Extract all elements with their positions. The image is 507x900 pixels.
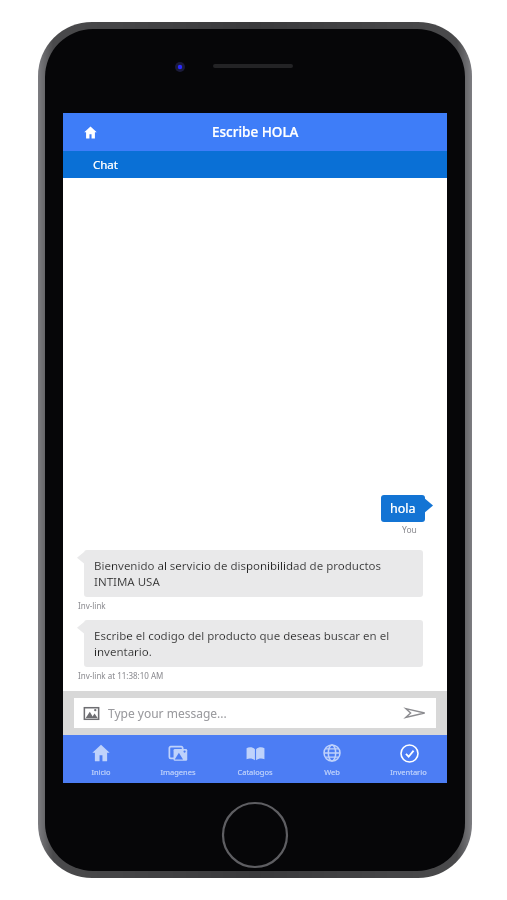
staticText: Type your message... (108, 705, 227, 721)
button[interactable]: Catalogos (216, 735, 293, 783)
staticText: Inv-link (78, 600, 106, 611)
staticText: Bienvenido al servicio de disponibilidad… (94, 558, 413, 589)
button[interactable]: Home (75, 117, 105, 147)
button[interactable]: hola (381, 495, 433, 522)
button[interactable]: Attach image (74, 698, 436, 728)
staticText: Escribe HOLA (212, 123, 299, 141)
staticText: Catalogos (237, 767, 273, 777)
button[interactable]: Imagenes (139, 735, 216, 783)
staticText: Chat (93, 157, 118, 173)
staticText: You (402, 524, 417, 536)
button[interactable]: Bienvenido al servicio de disponibilidad… (77, 550, 423, 597)
staticText: hola (390, 500, 416, 517)
button[interactable]: Escribe el codigo del producto que desea… (77, 620, 423, 667)
staticText: Escribe el codigo del producto que desea… (94, 628, 413, 659)
staticText: Web (324, 767, 340, 777)
button[interactable]: Inicio (63, 735, 139, 783)
staticText: Inv-link at 11:38:10 AM (78, 670, 164, 681)
button[interactable]: Attach image (82, 704, 100, 722)
staticText: Imagenes (160, 767, 196, 777)
button[interactable]: Send (402, 700, 428, 726)
staticText: Inicio (91, 767, 111, 777)
button[interactable]: Web (293, 735, 370, 783)
button[interactable]: Inventario (370, 735, 447, 783)
button[interactable]: Chat (63, 151, 447, 178)
staticText: Inventario (390, 767, 427, 777)
